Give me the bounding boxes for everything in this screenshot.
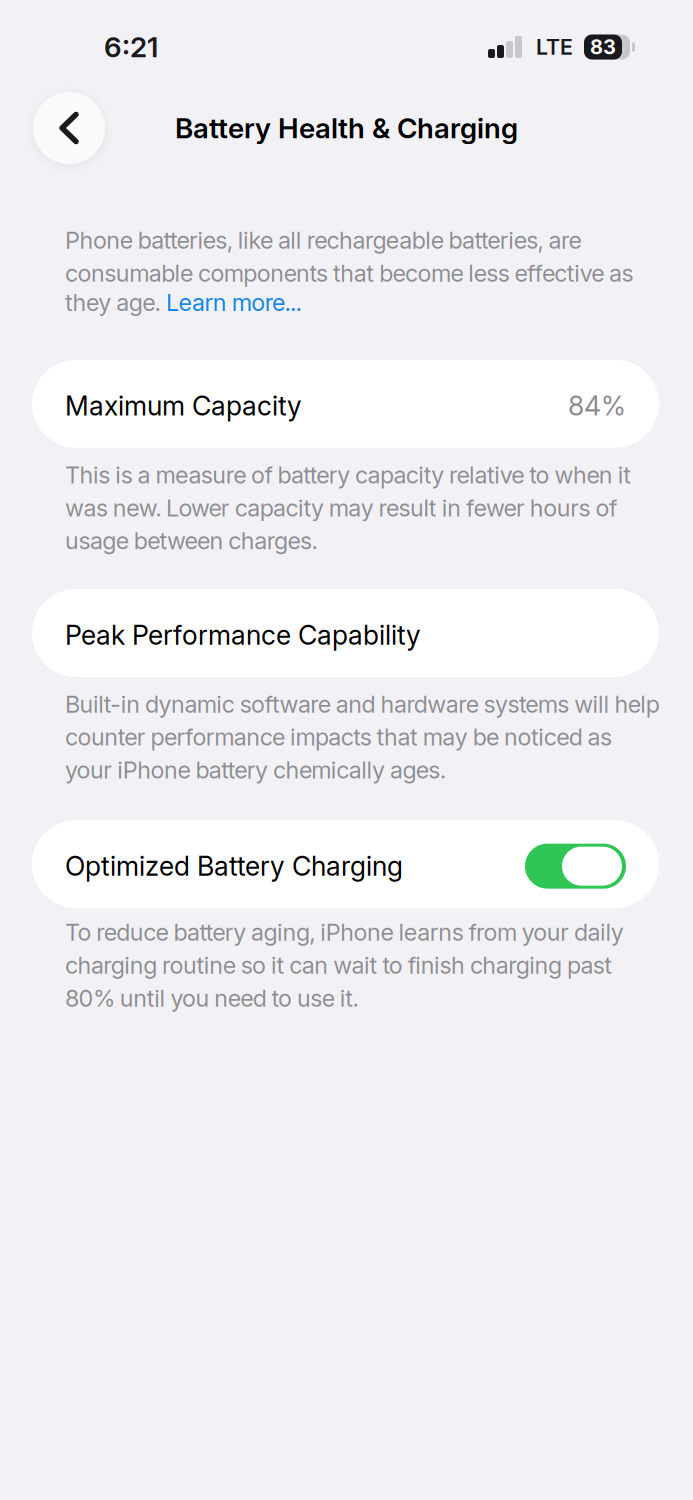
staticText: they age. (65, 288, 166, 317)
staticText: Peak Performance Capability (65, 619, 421, 651)
button[interactable]: Optimized Battery Charging (32, 820, 659, 908)
button[interactable]: Back (33, 92, 105, 164)
staticText: 84% (568, 390, 626, 422)
button[interactable]: Learn more... (166, 288, 301, 317)
button[interactable]: Maximum Capacity (32, 360, 659, 448)
staticText: To reduce battery aging, iPhone learns f… (65, 918, 624, 1012)
staticText: 6:21 (104, 30, 158, 64)
button[interactable]: Peak Performance Capability (32, 589, 659, 677)
staticText: Phone batteries, like all rechargeable b… (65, 226, 633, 287)
staticText: Optimized Battery Charging (65, 850, 403, 882)
staticText: Maximum Capacity (65, 390, 302, 422)
staticText: Built-in dynamic software and hardware s… (65, 690, 660, 784)
staticText: Battery Health & Charging (175, 111, 518, 145)
staticText: This is a measure of battery capacity re… (65, 461, 631, 555)
staticText: Learn more... (166, 288, 301, 317)
staticText: LTE (536, 34, 573, 60)
staticText: 83 (590, 35, 616, 59)
